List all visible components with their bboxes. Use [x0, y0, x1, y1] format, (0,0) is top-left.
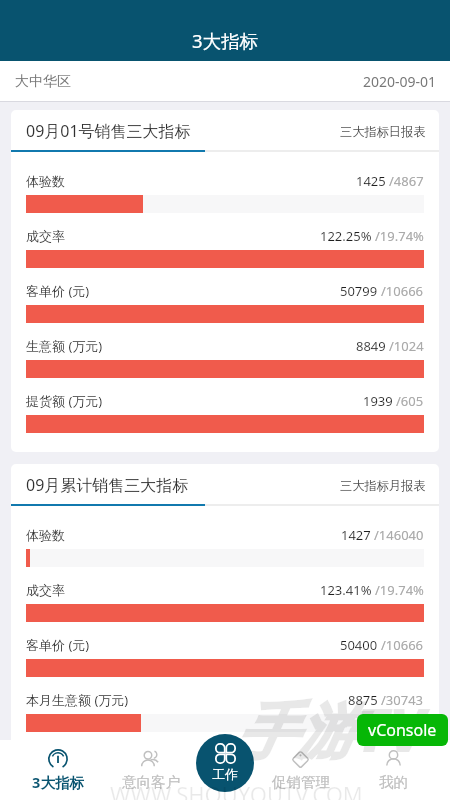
staticText: 成交率 — [26, 228, 65, 244]
staticText: /10666 — [381, 636, 424, 654]
staticText: 生意额 (万元) — [26, 337, 103, 355]
staticText: 122.25% — [320, 227, 372, 245]
staticText: 手游TV — [236, 688, 427, 770]
staticText: /1024 — [389, 337, 424, 355]
staticText: /19.74% — [375, 581, 424, 599]
staticText: 3大指标 — [192, 28, 259, 53]
button[interactable]: 意向客户 — [104, 740, 197, 800]
staticText: 客单价 (元) — [26, 636, 90, 654]
staticText: 8849 — [356, 337, 386, 355]
staticText: 促销管理 — [272, 773, 330, 791]
button[interactable]: 工作 — [196, 734, 254, 792]
staticText: 工作 — [212, 766, 238, 782]
staticText: 50400 — [340, 636, 378, 654]
button[interactable]: 我的 — [347, 740, 439, 800]
button[interactable]: 三大指标日报表 — [340, 124, 426, 139]
staticText: 客单价 (元) — [26, 282, 90, 300]
staticText: 50799 — [340, 282, 378, 300]
button[interactable]: 促销管理 — [254, 740, 347, 800]
staticText: 体验数 — [26, 527, 65, 543]
staticText: 1427 — [341, 526, 371, 544]
staticText: 提货额 (万元) — [26, 392, 103, 410]
staticText: 09月01号销售三大指标 — [26, 120, 191, 142]
staticText: 本月生意额 (万元) — [26, 691, 129, 709]
staticText: 2020-09-01 — [363, 72, 437, 91]
staticText: 3大指标 — [32, 772, 84, 792]
staticText: /4867 — [389, 172, 424, 190]
staticText: 意向客户 — [122, 773, 180, 791]
staticText: 1425 — [356, 172, 386, 190]
staticText: /30743 — [381, 691, 424, 709]
staticText: /19.74% — [375, 227, 424, 245]
staticText: 123.41% — [320, 581, 372, 599]
button[interactable]: vConsole — [357, 714, 448, 746]
staticText: /146040 — [374, 526, 424, 544]
staticText: 我的 — [379, 773, 408, 791]
staticText: 大中华区 — [15, 73, 71, 91]
staticText: 8875 — [348, 691, 378, 709]
staticText: vConsole — [368, 719, 437, 741]
staticText: 09月累计销售三大指标 — [26, 474, 189, 496]
staticText: /605 — [396, 392, 424, 410]
button[interactable]: 三大指标月报表 — [340, 478, 426, 493]
staticText: 体验数 — [26, 173, 65, 189]
staticText: 1939 — [363, 392, 393, 410]
staticText: WWW.SHOUYOUTV.COM — [110, 779, 363, 800]
staticText: /10666 — [381, 282, 424, 300]
staticText: 成交率 — [26, 582, 65, 598]
button[interactable]: 3大指标 — [11, 740, 104, 800]
